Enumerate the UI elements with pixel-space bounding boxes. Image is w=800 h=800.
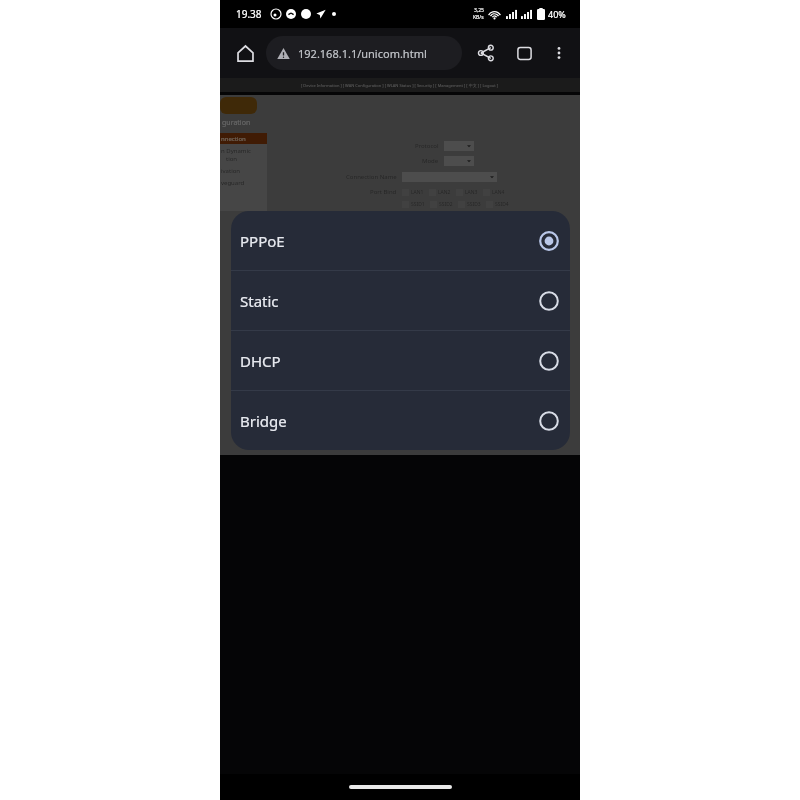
button[interactable]: Bridge: [231, 391, 570, 450]
staticText: PPPoE: [240, 231, 285, 251]
staticText: LAN1: [411, 189, 424, 196]
staticText: Mode: [422, 157, 439, 165]
staticText: [ Device Information ] [ WAN Configurati…: [301, 83, 499, 88]
button[interactable]: PPPoE: [231, 211, 570, 270]
button[interactable]: More options: [544, 38, 574, 68]
staticText: tion: [226, 155, 238, 163]
staticText: n Dynamic: [221, 147, 251, 155]
staticText: SSID3: [467, 201, 481, 208]
button[interactable]: Tabs: [508, 37, 540, 69]
staticText: veguard: [221, 179, 245, 187]
staticText: Protocol: [415, 142, 439, 150]
staticText: ivation: [221, 167, 241, 175]
button[interactable]: DHCP: [231, 331, 570, 390]
staticText: LAN3: [465, 189, 478, 196]
staticText: Bridge: [240, 411, 287, 431]
staticText: guration: [222, 118, 251, 128]
staticText: SSID4: [495, 201, 509, 208]
button[interactable]: Share: [470, 37, 502, 69]
button[interactable]: Home: [228, 36, 262, 70]
staticText: 40%: [548, 8, 566, 20]
staticText: LAN2: [438, 189, 451, 196]
staticText: SSID2: [439, 201, 453, 208]
staticText: SSID1: [411, 201, 425, 208]
button[interactable]: Static: [231, 271, 570, 330]
staticText: nnection: [221, 135, 246, 143]
staticText: Connection Name: [346, 173, 397, 181]
staticText: LAN4: [492, 189, 505, 196]
staticText: 3,25: [474, 7, 484, 14]
staticText: Static: [240, 291, 279, 311]
staticText: 19.38: [236, 7, 262, 21]
staticText: KB/s: [473, 14, 484, 21]
staticText: Port Bind: [370, 188, 397, 196]
staticText: DHCP: [240, 351, 281, 371]
button[interactable]: 192.168.1.1/unicom.html: [266, 36, 462, 70]
staticText: 192.168.1.1/unicom.html: [298, 46, 427, 61]
